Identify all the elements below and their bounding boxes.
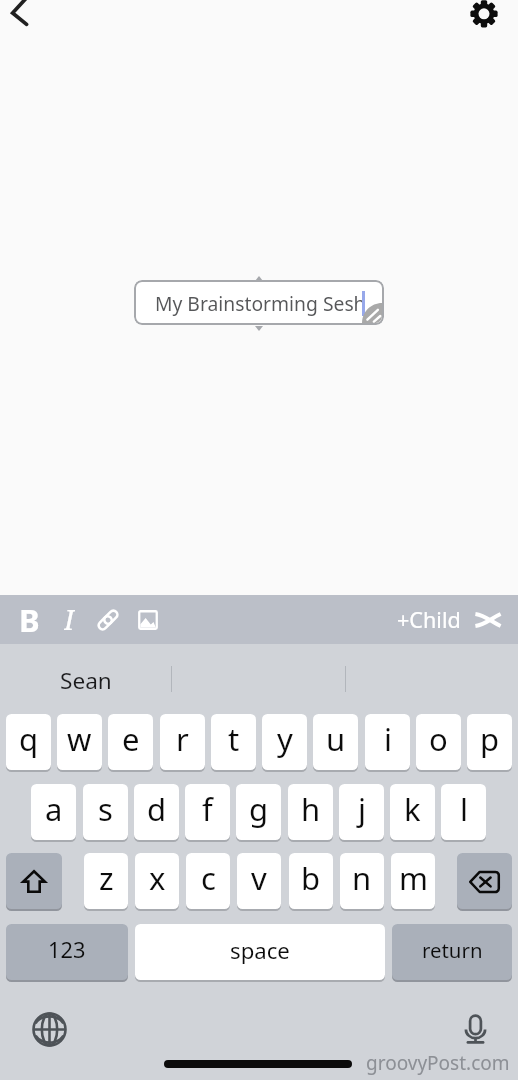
- button[interactable]: c: [186, 853, 230, 909]
- button[interactable]: i: [365, 714, 410, 770]
- staticText: s: [98, 788, 113, 830]
- button[interactable]: l: [441, 784, 486, 840]
- staticText: My Brainstorming Sesh: [155, 290, 366, 316]
- button[interactable]: Backspace: [457, 853, 512, 909]
- staticText: m: [399, 857, 428, 899]
- staticText: t: [228, 718, 240, 760]
- staticText: a: [45, 788, 63, 830]
- button[interactable]: p: [467, 714, 512, 770]
- staticText: h: [301, 788, 321, 830]
- staticText: q: [19, 718, 39, 760]
- button[interactable]: Back: [0, 0, 42, 38]
- button[interactable]: j: [339, 784, 384, 840]
- button[interactable]: m: [391, 853, 435, 909]
- button[interactable]: Bold: [12, 603, 46, 637]
- button[interactable]: o: [416, 714, 461, 770]
- staticText: j: [358, 788, 366, 830]
- button[interactable]: Shuffle: [470, 602, 506, 638]
- button[interactable]: Shift: [6, 853, 62, 909]
- button[interactable]: [134, 280, 384, 325]
- button[interactable]: e: [108, 714, 153, 770]
- button[interactable]: +Child: [392, 597, 466, 642]
- staticText: c: [201, 857, 216, 899]
- staticText: r: [176, 718, 189, 760]
- button[interactable]: v: [237, 853, 281, 909]
- staticText: n: [352, 857, 372, 899]
- staticText: k: [404, 788, 421, 830]
- staticText: d: [147, 788, 167, 830]
- button[interactable]: Link: [91, 603, 125, 637]
- button[interactable]: z: [84, 853, 128, 909]
- staticText: return: [422, 936, 483, 964]
- button[interactable]: w: [57, 714, 102, 770]
- button[interactable]: y: [262, 714, 307, 770]
- button[interactable]: d: [134, 784, 179, 840]
- staticText: g: [249, 788, 269, 830]
- button[interactable]: a: [31, 784, 76, 840]
- staticText: B: [19, 599, 40, 633]
- button[interactable]: return: [392, 924, 512, 980]
- staticText: groovyPost.com: [366, 1050, 510, 1076]
- button[interactable]: q: [6, 714, 51, 770]
- staticText: b: [301, 857, 321, 899]
- staticText: o: [429, 718, 448, 760]
- staticText: l: [460, 788, 468, 830]
- button[interactable]: Dictate: [458, 1013, 493, 1048]
- staticText: p: [480, 718, 500, 760]
- staticText: f: [202, 788, 213, 830]
- button[interactable]: Sean: [0, 646, 171, 714]
- button[interactable]: g: [236, 784, 281, 840]
- button[interactable]: b: [289, 853, 333, 909]
- button[interactable]: Settings: [466, 0, 502, 32]
- staticText: space: [230, 935, 290, 965]
- staticText: v: [251, 857, 267, 899]
- button[interactable]: Italic: [52, 603, 86, 637]
- button[interactable]: t: [211, 714, 256, 770]
- staticText: 123: [48, 935, 86, 965]
- button[interactable]: n: [340, 853, 384, 909]
- staticText: w: [67, 718, 92, 760]
- staticText: e: [122, 718, 140, 760]
- staticText: y: [277, 718, 293, 760]
- button[interactable]: u: [313, 714, 358, 770]
- staticText: x: [149, 857, 166, 899]
- button[interactable]: space: [135, 924, 385, 980]
- button[interactable]: k: [390, 784, 435, 840]
- button[interactable]: 123: [6, 924, 128, 980]
- staticText: u: [326, 718, 346, 760]
- staticText: Sean: [60, 665, 112, 696]
- button[interactable]: s: [83, 784, 128, 840]
- button[interactable]: h: [288, 784, 333, 840]
- staticText: I: [64, 600, 75, 634]
- button[interactable]: r: [160, 714, 205, 770]
- button[interactable]: Insert image: [131, 603, 165, 637]
- button[interactable]: x: [135, 853, 179, 909]
- staticText: z: [99, 857, 114, 899]
- staticText: i: [384, 718, 392, 760]
- staticText: +Child: [397, 605, 461, 634]
- button[interactable]: Change keyboard: [32, 1013, 67, 1048]
- button[interactable]: f: [185, 784, 230, 840]
